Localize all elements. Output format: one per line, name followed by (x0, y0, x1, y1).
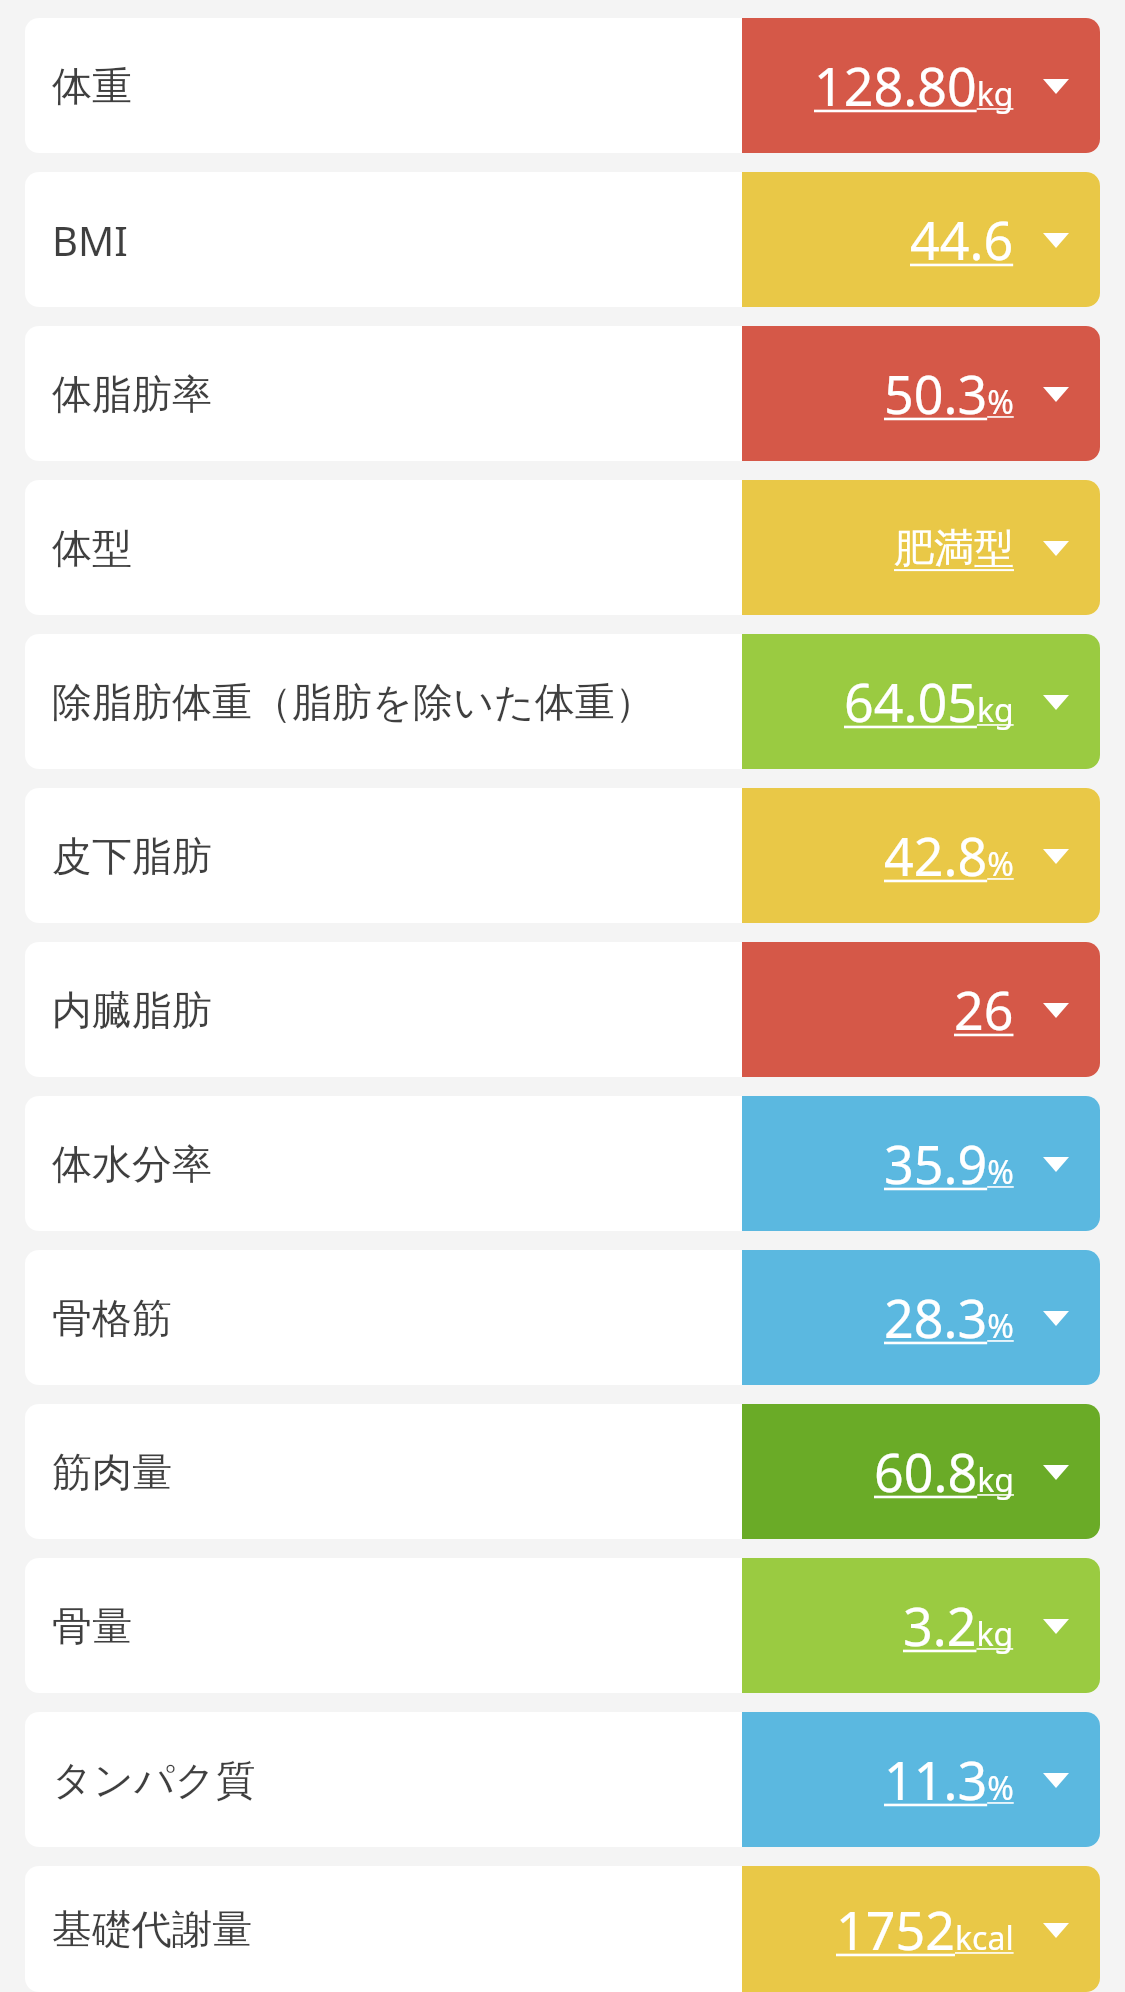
button[interactable]: Expand 骨量 (1036, 1606, 1076, 1646)
staticText: 皮下脂肪 (52, 831, 212, 881)
button[interactable]: Expand 体脂肪率 (1036, 374, 1076, 414)
button[interactable]: 体脂肪率 (25, 326, 1100, 461)
staticText: 11.3% (884, 1744, 1014, 1815)
staticText: 42.8% (884, 820, 1014, 891)
staticText: 基礎代謝量 (52, 1904, 252, 1954)
staticText: 28.3% (884, 1282, 1014, 1353)
button[interactable]: Expand 体重 (1036, 66, 1076, 106)
staticText: 1752kcal (836, 1894, 1014, 1965)
staticText: 体脂肪率 (52, 369, 212, 419)
staticText: 35.9% (884, 1128, 1014, 1199)
staticText: 体重 (52, 61, 132, 111)
button[interactable]: 内臓脂肪 (25, 942, 1100, 1077)
staticText: BMI (52, 213, 128, 267)
button[interactable]: Expand 基礎代謝量 (1036, 1910, 1076, 1950)
button[interactable]: Expand 筋肉量 (1036, 1452, 1076, 1492)
button[interactable]: 皮下脂肪 (25, 788, 1100, 923)
button[interactable]: Expand BMI (1036, 220, 1076, 260)
staticText: 内臓脂肪 (52, 985, 212, 1035)
staticText: 骨格筋 (52, 1293, 172, 1343)
staticText: 50.3% (884, 358, 1014, 429)
button[interactable]: BMI (25, 172, 1100, 307)
staticText: 60.8kg (874, 1436, 1014, 1507)
staticText: 体水分率 (52, 1139, 212, 1189)
button[interactable]: 体水分率 (25, 1096, 1100, 1231)
button[interactable]: Expand 皮下脂肪 (1036, 836, 1076, 876)
button[interactable]: Expand 体型 (1036, 528, 1076, 568)
button[interactable]: 基礎代謝量 (25, 1866, 1100, 1992)
button[interactable]: Expand 除脂肪体重（脂肪を除いた体重） (1036, 682, 1076, 722)
button[interactable]: 除脂肪体重（脂肪を除いた体重） (25, 634, 1100, 769)
button[interactable]: Expand 骨格筋 (1036, 1298, 1076, 1338)
staticText: 44.6 (910, 204, 1014, 275)
staticText: 128.80kg (814, 50, 1014, 121)
button[interactable]: 筋肉量 (25, 1404, 1100, 1539)
staticText: 除脂肪体重（脂肪を除いた体重） (52, 677, 655, 727)
button[interactable]: Expand 内臓脂肪 (1036, 990, 1076, 1030)
button[interactable]: Expand 体水分率 (1036, 1144, 1076, 1184)
staticText: 肥満型 (894, 523, 1014, 573)
staticText: 26 (954, 974, 1014, 1045)
staticText: タンパク質 (52, 1755, 256, 1805)
staticText: 体型 (52, 523, 132, 573)
staticText: 64.05kg (844, 666, 1014, 737)
staticText: 筋肉量 (52, 1447, 172, 1497)
button[interactable]: 体重 (25, 18, 1100, 153)
button[interactable]: 骨格筋 (25, 1250, 1100, 1385)
staticText: 3.2kg (903, 1590, 1014, 1661)
button[interactable]: タンパク質 (25, 1712, 1100, 1847)
button[interactable]: Expand タンパク質 (1036, 1760, 1076, 1800)
staticText: 骨量 (52, 1601, 132, 1651)
button[interactable]: 骨量 (25, 1558, 1100, 1693)
button[interactable]: 体型 (25, 480, 1100, 615)
